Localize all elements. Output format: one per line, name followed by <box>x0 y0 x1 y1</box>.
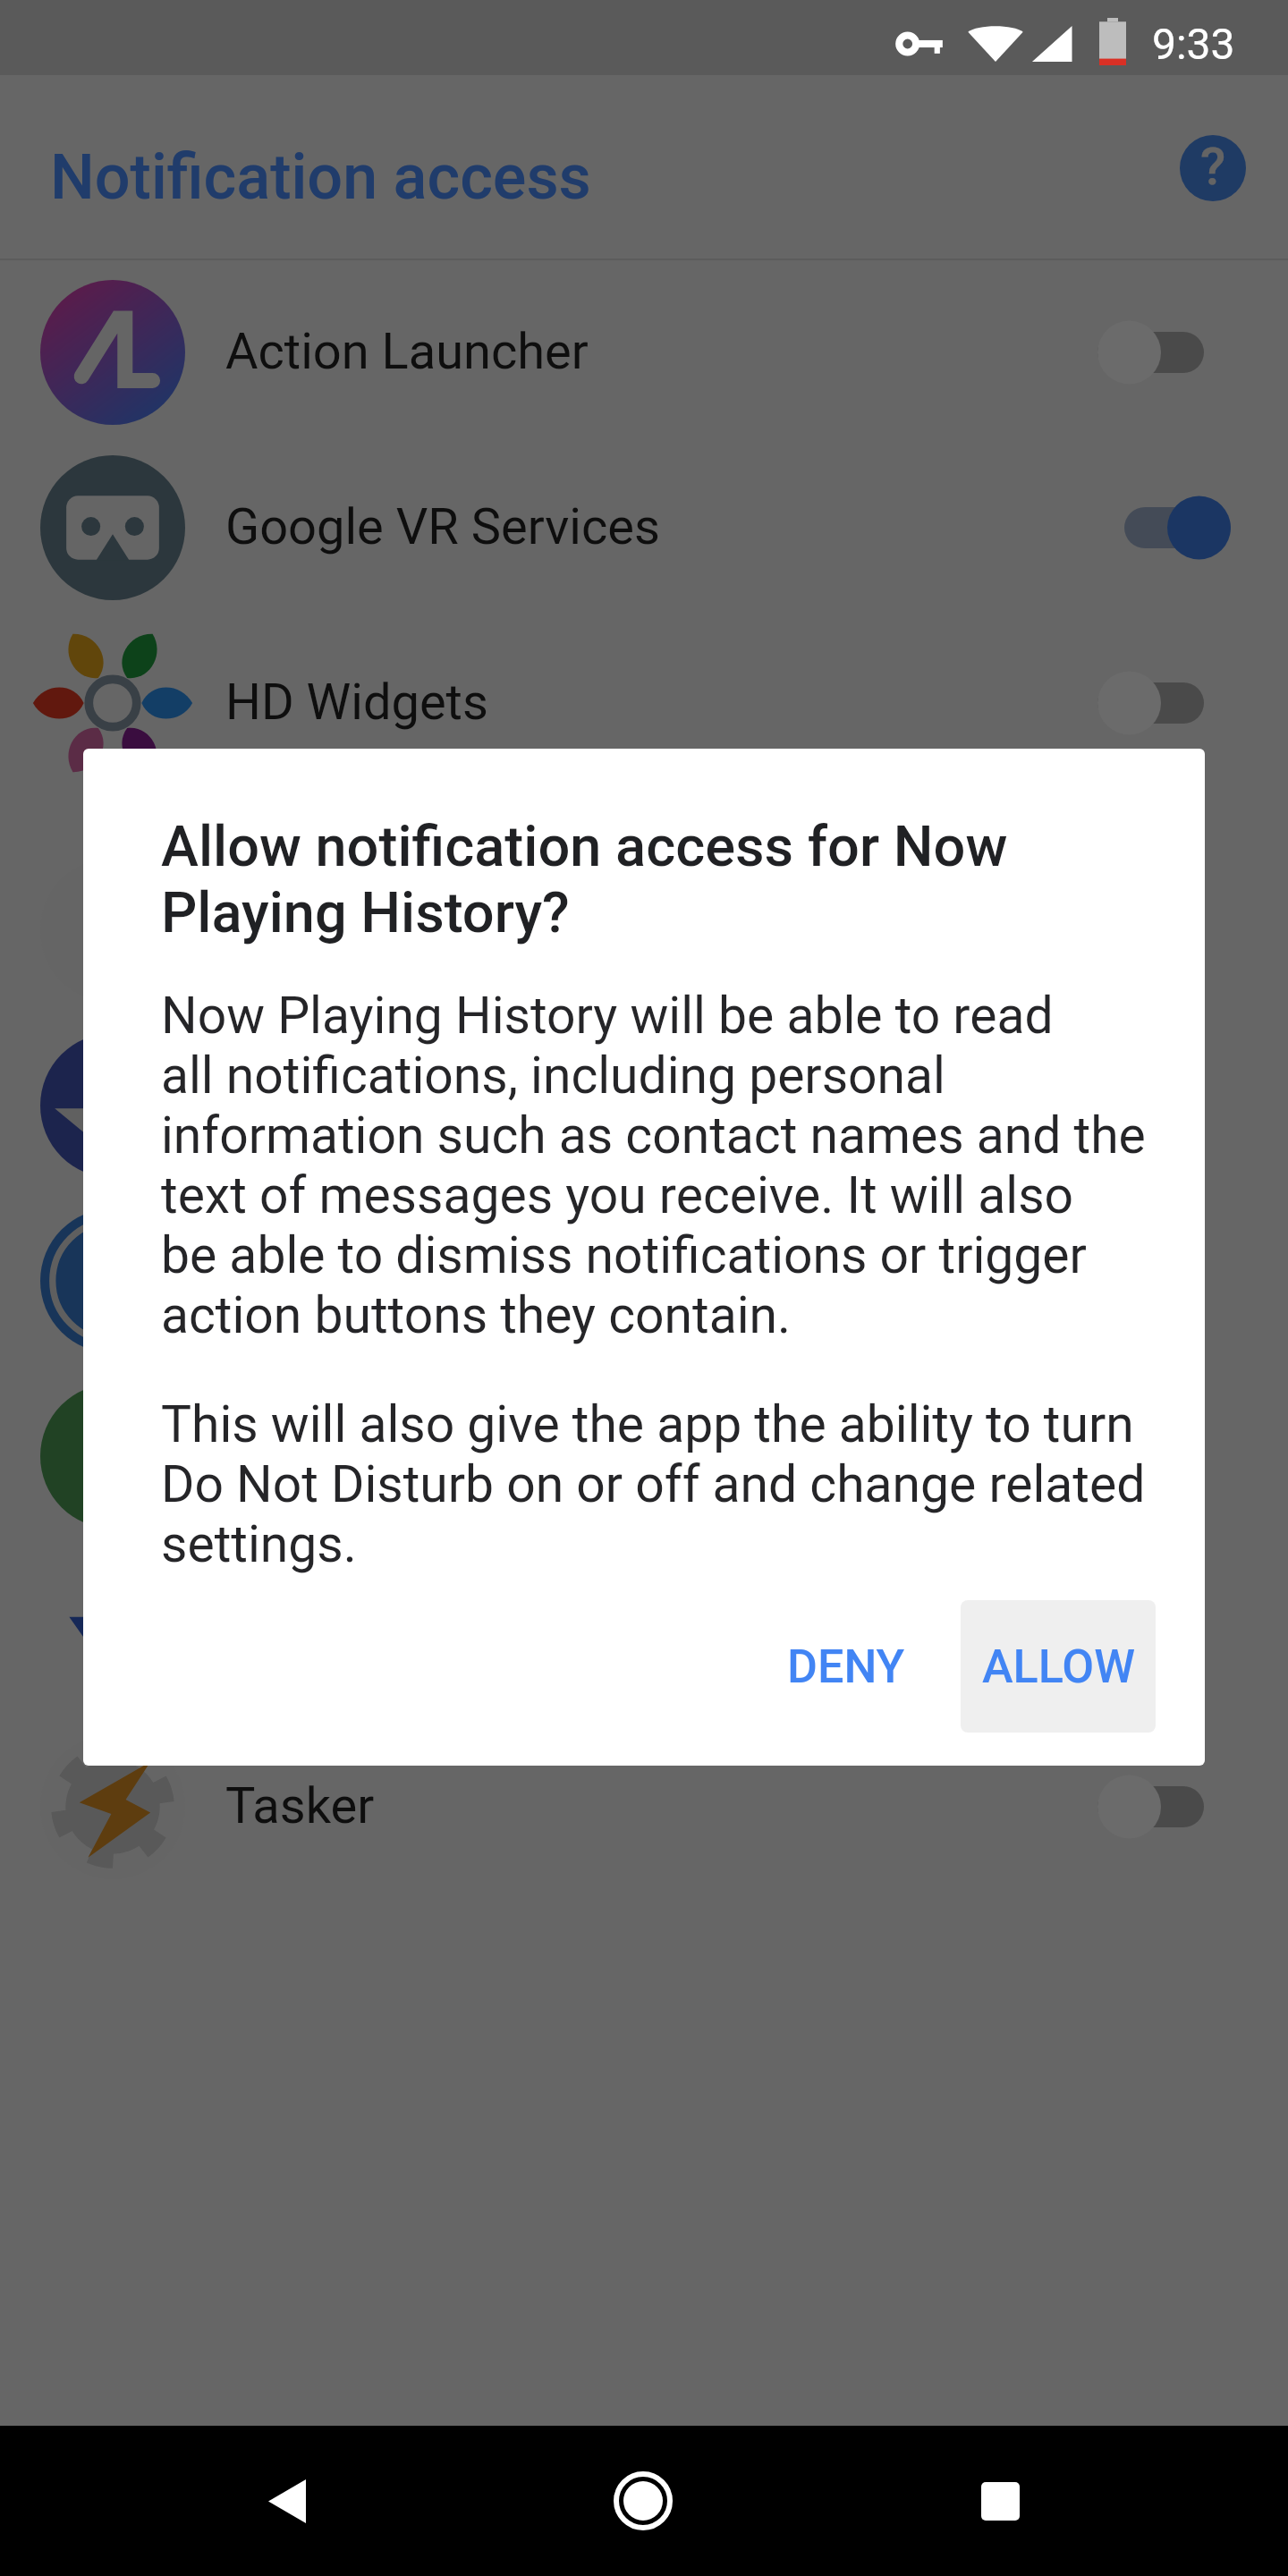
button[interactable]: Notification access disabled <box>1070 1544 1245 1719</box>
staticText: Playing History? <box>161 880 570 946</box>
button[interactable]: IFTTT <box>0 838 1288 1013</box>
staticText: Notification access <box>50 140 591 214</box>
button[interactable]: Action Launcher <box>0 260 1288 436</box>
staticText: 9:33 <box>1152 19 1235 69</box>
button[interactable]: Notification access disabled <box>1070 1018 1245 1193</box>
button[interactable]: Pulse SMS <box>0 1189 1288 1364</box>
staticText: ALLOW <box>982 1640 1135 1694</box>
button[interactable]: Back <box>212 2426 362 2576</box>
button[interactable]: Recent apps <box>925 2426 1075 2576</box>
button[interactable]: Notification access disabled <box>1070 265 1245 440</box>
button[interactable]: Notification access disabled <box>1070 843 1245 1018</box>
staticText: IFTTT <box>225 900 358 959</box>
staticText: Action Launcher <box>225 322 589 381</box>
staticText: Pulse SMS <box>225 1250 465 1309</box>
button[interactable]: Notification access disabled <box>1070 1193 1245 1368</box>
button[interactable]: Notification access enabled <box>1070 440 1245 615</box>
staticText: This will also give the app the ability … <box>161 1394 1134 1454</box>
staticText: Now Playing History will be able to read <box>161 986 1054 1046</box>
button[interactable]: Notification access disabled <box>1070 615 1245 791</box>
button[interactable]: DENY <box>765 1600 928 1733</box>
staticText: text of messages you receive. It will al… <box>161 1165 1074 1225</box>
button[interactable]: Notification access disabled <box>1070 1368 1245 1544</box>
button[interactable]: Help <box>1163 118 1263 218</box>
button[interactable]: Notification access disabled <box>1070 1719 1245 1894</box>
button[interactable]: Spotify <box>0 1364 1288 1539</box>
staticText: Google VR Services <box>225 497 660 556</box>
button[interactable]: Textra <box>0 1539 1288 1715</box>
staticText: Tasker <box>225 1776 375 1835</box>
staticText: Do Not Disturb on or off and change rela… <box>161 1454 1146 1514</box>
staticText: Spotify <box>225 1426 382 1485</box>
staticText: HD Widgets <box>225 673 488 732</box>
button[interactable]: Nova Launcher <box>0 1013 1288 1189</box>
staticText: DENY <box>787 1640 905 1694</box>
staticText: all notifications, including personal <box>161 1046 945 1106</box>
staticText: information such as contact names and th… <box>161 1106 1146 1165</box>
staticText: ? <box>1200 136 1226 197</box>
staticText: Nova Launcher <box>225 1075 560 1134</box>
button[interactable]: Tasker <box>0 1715 1288 1890</box>
button[interactable]: ALLOW <box>961 1600 1156 1733</box>
button[interactable]: HD Widgets <box>0 611 1288 786</box>
staticText: settings. <box>161 1514 357 1574</box>
button[interactable]: Home <box>568 2426 718 2576</box>
staticText: Allow notification access for Now <box>161 814 1008 880</box>
staticText: action buttons they contain. <box>161 1285 792 1345</box>
button[interactable]: Google VR Services <box>0 436 1288 611</box>
staticText: be able to dismiss notifications or trig… <box>161 1225 1087 1285</box>
